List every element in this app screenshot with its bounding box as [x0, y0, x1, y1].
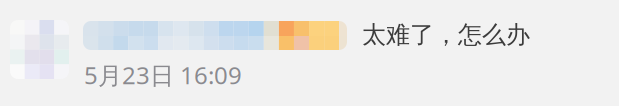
button[interactable]: Profile photo: [10, 20, 69, 79]
staticText: 5月23日 16:09: [84, 59, 242, 91]
button[interactable]: Message: [83, 21, 347, 50]
staticText: 太难了，怎么办: [362, 20, 530, 49]
